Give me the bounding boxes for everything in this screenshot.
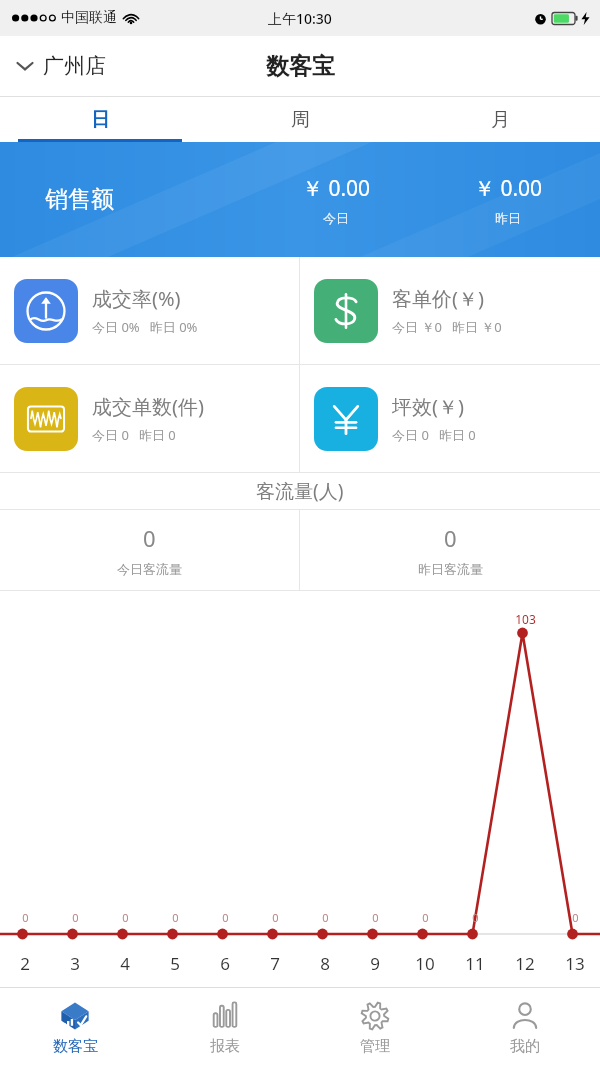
staticText: 0: [143, 523, 156, 553]
button[interactable]: 销售额: [0, 142, 600, 257]
button[interactable]: 周: [200, 97, 400, 142]
staticText: 9: [370, 952, 380, 975]
staticText: 管理: [360, 1037, 390, 1056]
staticText: 昨日客流量: [418, 561, 483, 577]
button[interactable]: 0: [300, 510, 600, 590]
staticText: 昨日: [495, 210, 521, 226]
staticText: 0: [222, 910, 229, 925]
button[interactable]: 报表: [150, 988, 300, 1066]
staticText: 坪效(￥): [392, 393, 464, 420]
staticText: 今日: [323, 210, 349, 226]
staticText: 0: [444, 523, 457, 553]
button[interactable]: 成交率(%): [0, 257, 299, 364]
staticText: 我的: [510, 1037, 540, 1056]
button[interactable]: 我的: [450, 988, 600, 1066]
staticText: 11: [465, 952, 485, 975]
staticText: 成交率(%): [92, 285, 181, 312]
staticText: 7: [270, 952, 280, 975]
staticText: 周: [291, 108, 310, 132]
staticText: 客单价(￥): [392, 285, 484, 312]
staticText: 6: [220, 952, 230, 975]
staticText: 今日 ￥0 昨日 ￥0: [392, 318, 502, 336]
staticText: 0: [22, 910, 29, 925]
staticText: 5: [170, 952, 180, 975]
button[interactable]: 0: [0, 510, 299, 590]
staticText: 0: [572, 910, 579, 925]
staticText: 3: [70, 952, 80, 975]
staticText: 成交单数(件): [92, 393, 204, 420]
staticText: 今日 0% 昨日 0%: [92, 318, 198, 336]
staticText: 13: [565, 952, 585, 975]
staticText: 客流量(人): [256, 478, 344, 504]
staticText: 今日 0 昨日 0: [92, 426, 176, 444]
button[interactable]: 日: [0, 97, 200, 142]
staticText: 日: [91, 108, 110, 132]
staticText: 0: [172, 910, 179, 925]
button[interactable]: 成交单数(件): [0, 365, 299, 472]
staticText: 0: [272, 910, 279, 925]
staticText: 0: [72, 910, 79, 925]
staticText: 103: [515, 611, 536, 627]
staticText: 0: [422, 910, 429, 925]
staticText: 12: [515, 952, 535, 975]
staticText: 数客宝: [53, 1037, 98, 1056]
staticText: 今日客流量: [117, 561, 182, 577]
staticText: 0: [322, 910, 329, 925]
staticText: 0: [122, 910, 129, 925]
staticText: 8: [320, 952, 330, 975]
staticText: 0: [372, 910, 379, 925]
staticText: 10: [415, 952, 435, 975]
staticText: 0: [472, 910, 479, 925]
staticText: 月: [491, 108, 510, 132]
staticText: 2: [20, 952, 30, 975]
staticText: 销售额: [45, 185, 114, 214]
button[interactable]: 广州店: [0, 45, 122, 87]
staticText: ￥ 0.00: [474, 174, 543, 203]
staticText: 数客宝: [266, 52, 335, 81]
staticText: 4: [120, 952, 130, 975]
button[interactable]: 管理: [300, 988, 450, 1066]
button[interactable]: 数客宝: [0, 988, 150, 1066]
button[interactable]: 客单价(￥): [300, 257, 600, 364]
staticText: 中国联通: [61, 9, 117, 27]
staticText: 上午10:30: [268, 9, 332, 28]
staticText: ￥ 0.00: [302, 174, 371, 203]
staticText: 今日 0 昨日 0: [392, 426, 476, 444]
staticText: 报表: [210, 1037, 240, 1056]
button[interactable]: 月: [400, 97, 600, 142]
staticText: 广州店: [43, 53, 106, 79]
button[interactable]: 坪效(￥): [300, 365, 600, 472]
